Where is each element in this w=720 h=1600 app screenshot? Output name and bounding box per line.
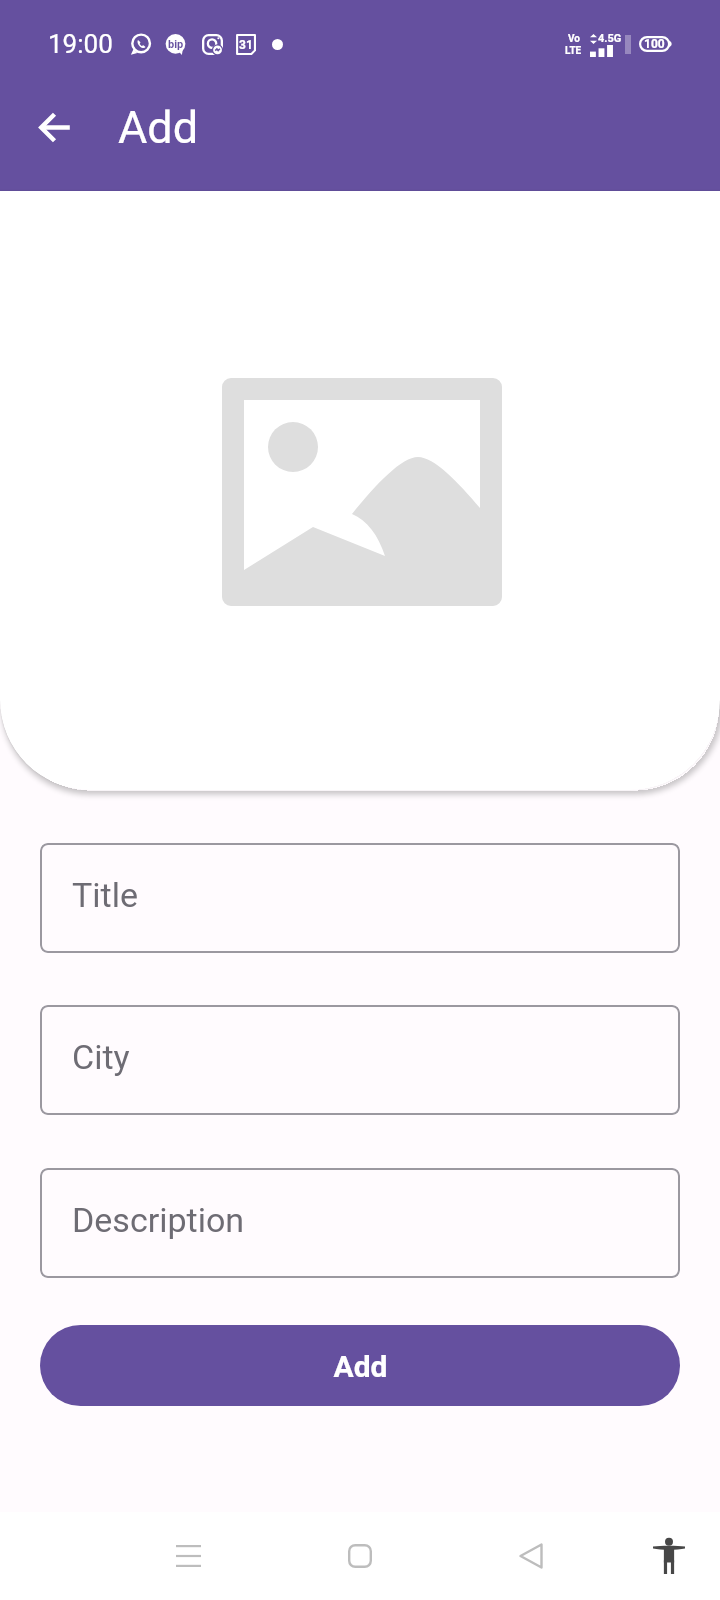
- staticText: LTE: [565, 45, 582, 55]
- button[interactable]: Back: [22, 94, 88, 160]
- staticText: Title: [72, 875, 138, 915]
- button[interactable]: City: [40, 1005, 680, 1115]
- staticText: bip: [168, 38, 184, 51]
- button[interactable]: Title: [40, 843, 680, 953]
- button[interactable]: Description: [40, 1168, 680, 1278]
- staticText: Vo: [568, 33, 580, 45]
- staticText: Add: [333, 1349, 388, 1384]
- staticText: 100: [644, 37, 665, 51]
- button[interactable]: Accessibility: [633, 1520, 705, 1592]
- staticText: 19:00: [48, 29, 113, 59]
- staticText: Description: [72, 1200, 245, 1240]
- button[interactable]: Back: [495, 1520, 567, 1592]
- staticText: City: [72, 1037, 130, 1077]
- staticText: 31: [239, 38, 253, 52]
- staticText: Add: [118, 101, 199, 154]
- button[interactable]: Add: [40, 1325, 680, 1406]
- button[interactable]: Home: [324, 1520, 396, 1592]
- button[interactable]: Recent apps: [152, 1520, 224, 1592]
- staticText: 4.5G: [598, 32, 622, 45]
